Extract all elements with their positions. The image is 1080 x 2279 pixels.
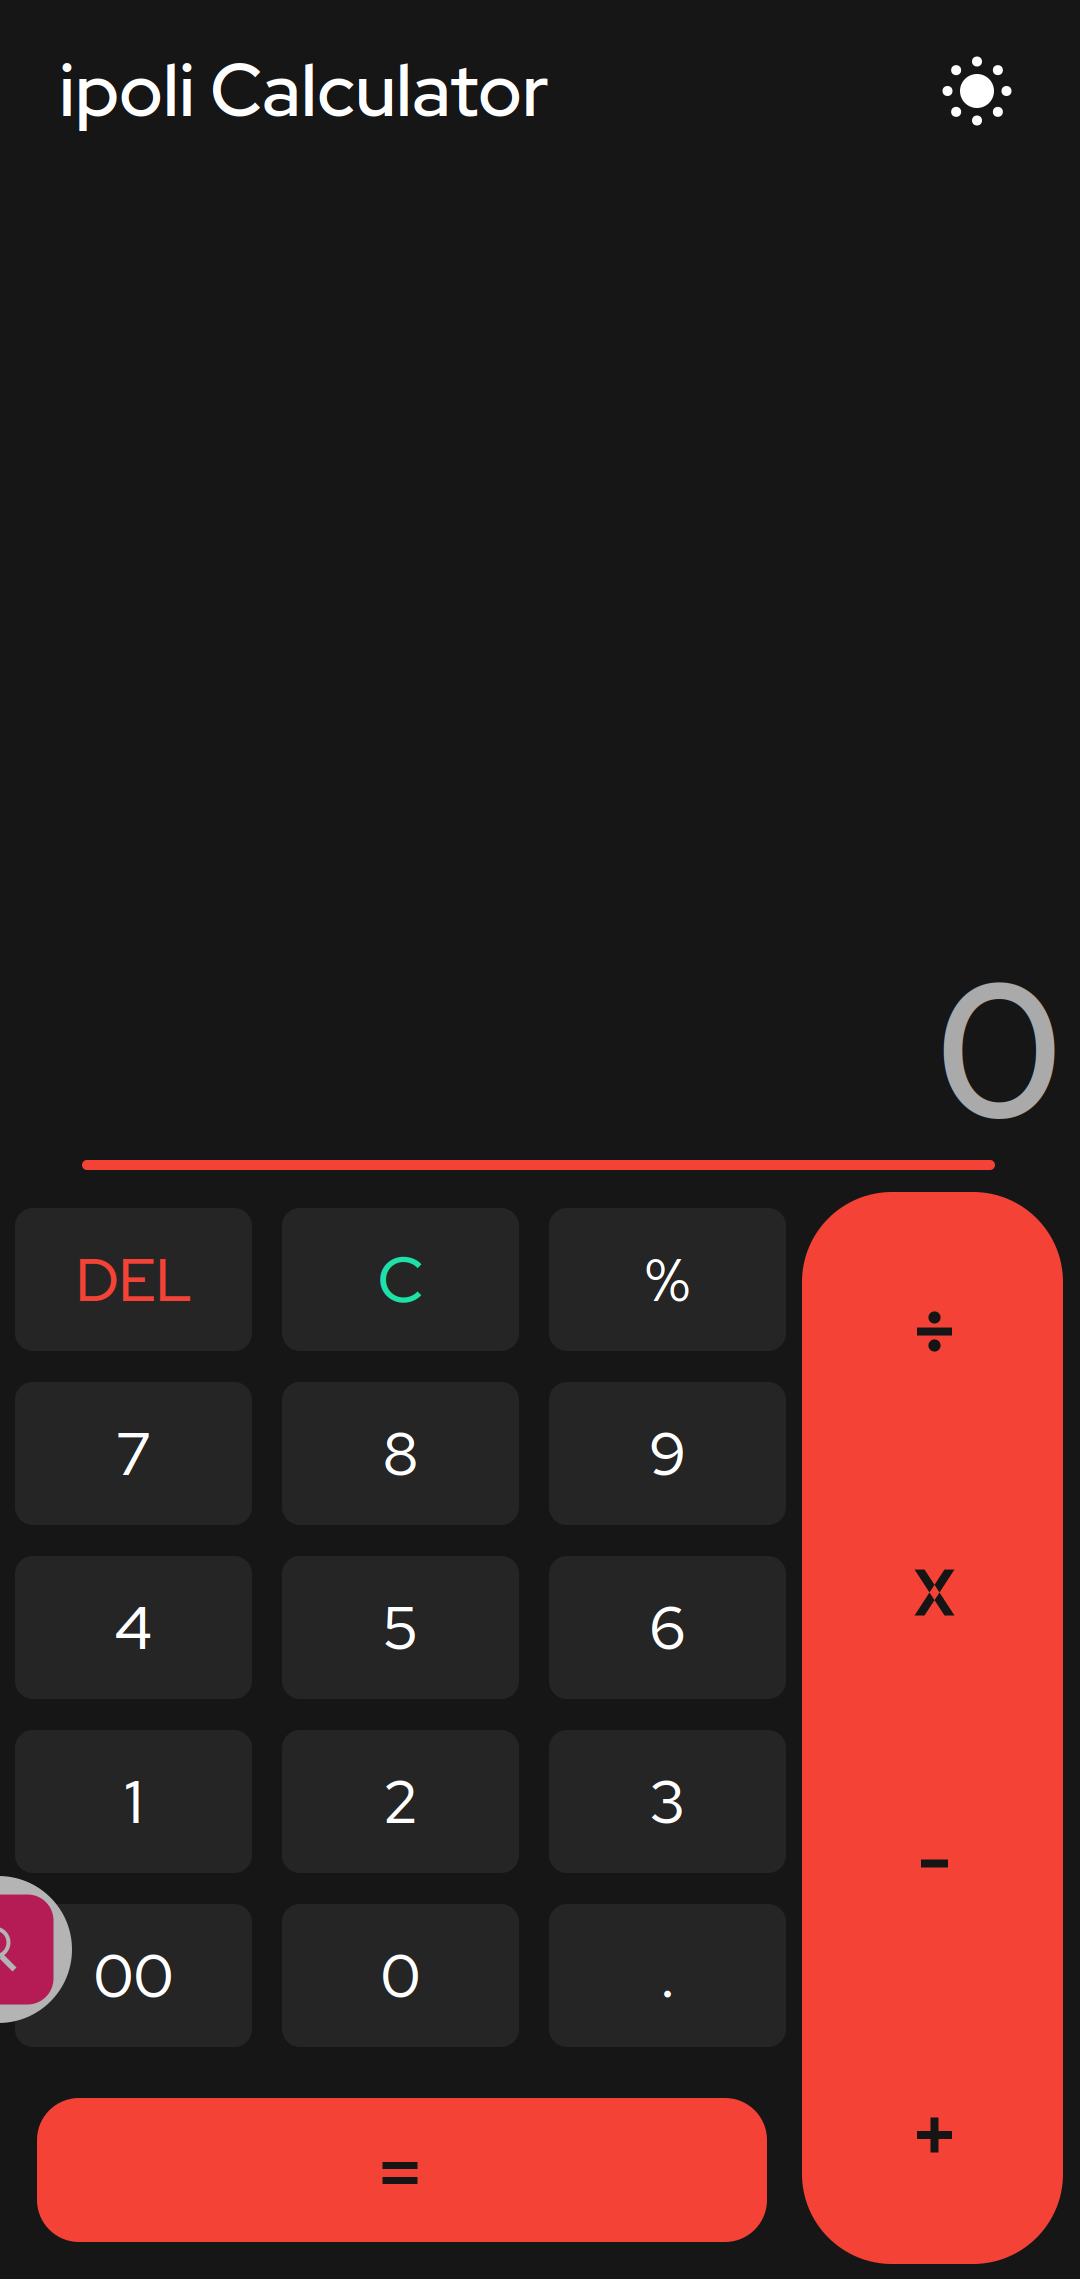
staticText: 4 bbox=[114, 1588, 152, 1667]
staticText: 0 bbox=[380, 1936, 420, 2015]
staticText: . bbox=[660, 1936, 675, 2015]
button[interactable]: 1 bbox=[15, 1730, 252, 1873]
button[interactable]: Multiply bbox=[802, 1460, 1063, 1728]
staticText: 0 bbox=[936, 926, 1062, 1174]
staticText: 3 bbox=[649, 1762, 685, 1841]
staticText: 00 bbox=[93, 1936, 173, 2015]
button[interactable]: 6 bbox=[549, 1556, 786, 1699]
staticText: ipoli Calculator bbox=[59, 42, 549, 138]
button[interactable]: 9 bbox=[549, 1382, 786, 1525]
button[interactable]: 2 bbox=[282, 1730, 519, 1873]
staticText: 6 bbox=[649, 1588, 685, 1667]
button[interactable]: Add bbox=[802, 1996, 1063, 2264]
button[interactable]: 8 bbox=[282, 1382, 519, 1525]
staticText: 8 bbox=[382, 1414, 418, 1493]
staticText: C bbox=[377, 1237, 423, 1322]
button[interactable]: Subtract bbox=[802, 1728, 1063, 1996]
staticText: 7 bbox=[115, 1414, 151, 1493]
button[interactable]: % bbox=[549, 1208, 786, 1351]
button[interactable]: 5 bbox=[282, 1556, 519, 1699]
staticText: 9 bbox=[649, 1414, 686, 1493]
button[interactable]: 4 bbox=[15, 1556, 252, 1699]
staticText: 1 bbox=[124, 1762, 142, 1841]
staticText: 5 bbox=[382, 1588, 418, 1667]
button[interactable]: . bbox=[549, 1904, 786, 2047]
button[interactable]: Search bbox=[0, 1876, 72, 2023]
button[interactable]: Divide bbox=[802, 1192, 1063, 1460]
button[interactable]: DEL bbox=[15, 1208, 252, 1351]
button[interactable]: 3 bbox=[549, 1730, 786, 1873]
button[interactable]: Equals bbox=[37, 2098, 767, 2242]
staticText: 2 bbox=[382, 1762, 418, 1841]
button[interactable]: Brightness bbox=[943, 57, 1011, 125]
staticText: DEL bbox=[75, 1240, 191, 1319]
staticText: % bbox=[645, 1240, 690, 1319]
button[interactable]: 7 bbox=[15, 1382, 252, 1525]
button[interactable]: 00 bbox=[15, 1904, 252, 2047]
button[interactable]: C bbox=[282, 1208, 519, 1351]
button[interactable]: 0 bbox=[282, 1904, 519, 2047]
